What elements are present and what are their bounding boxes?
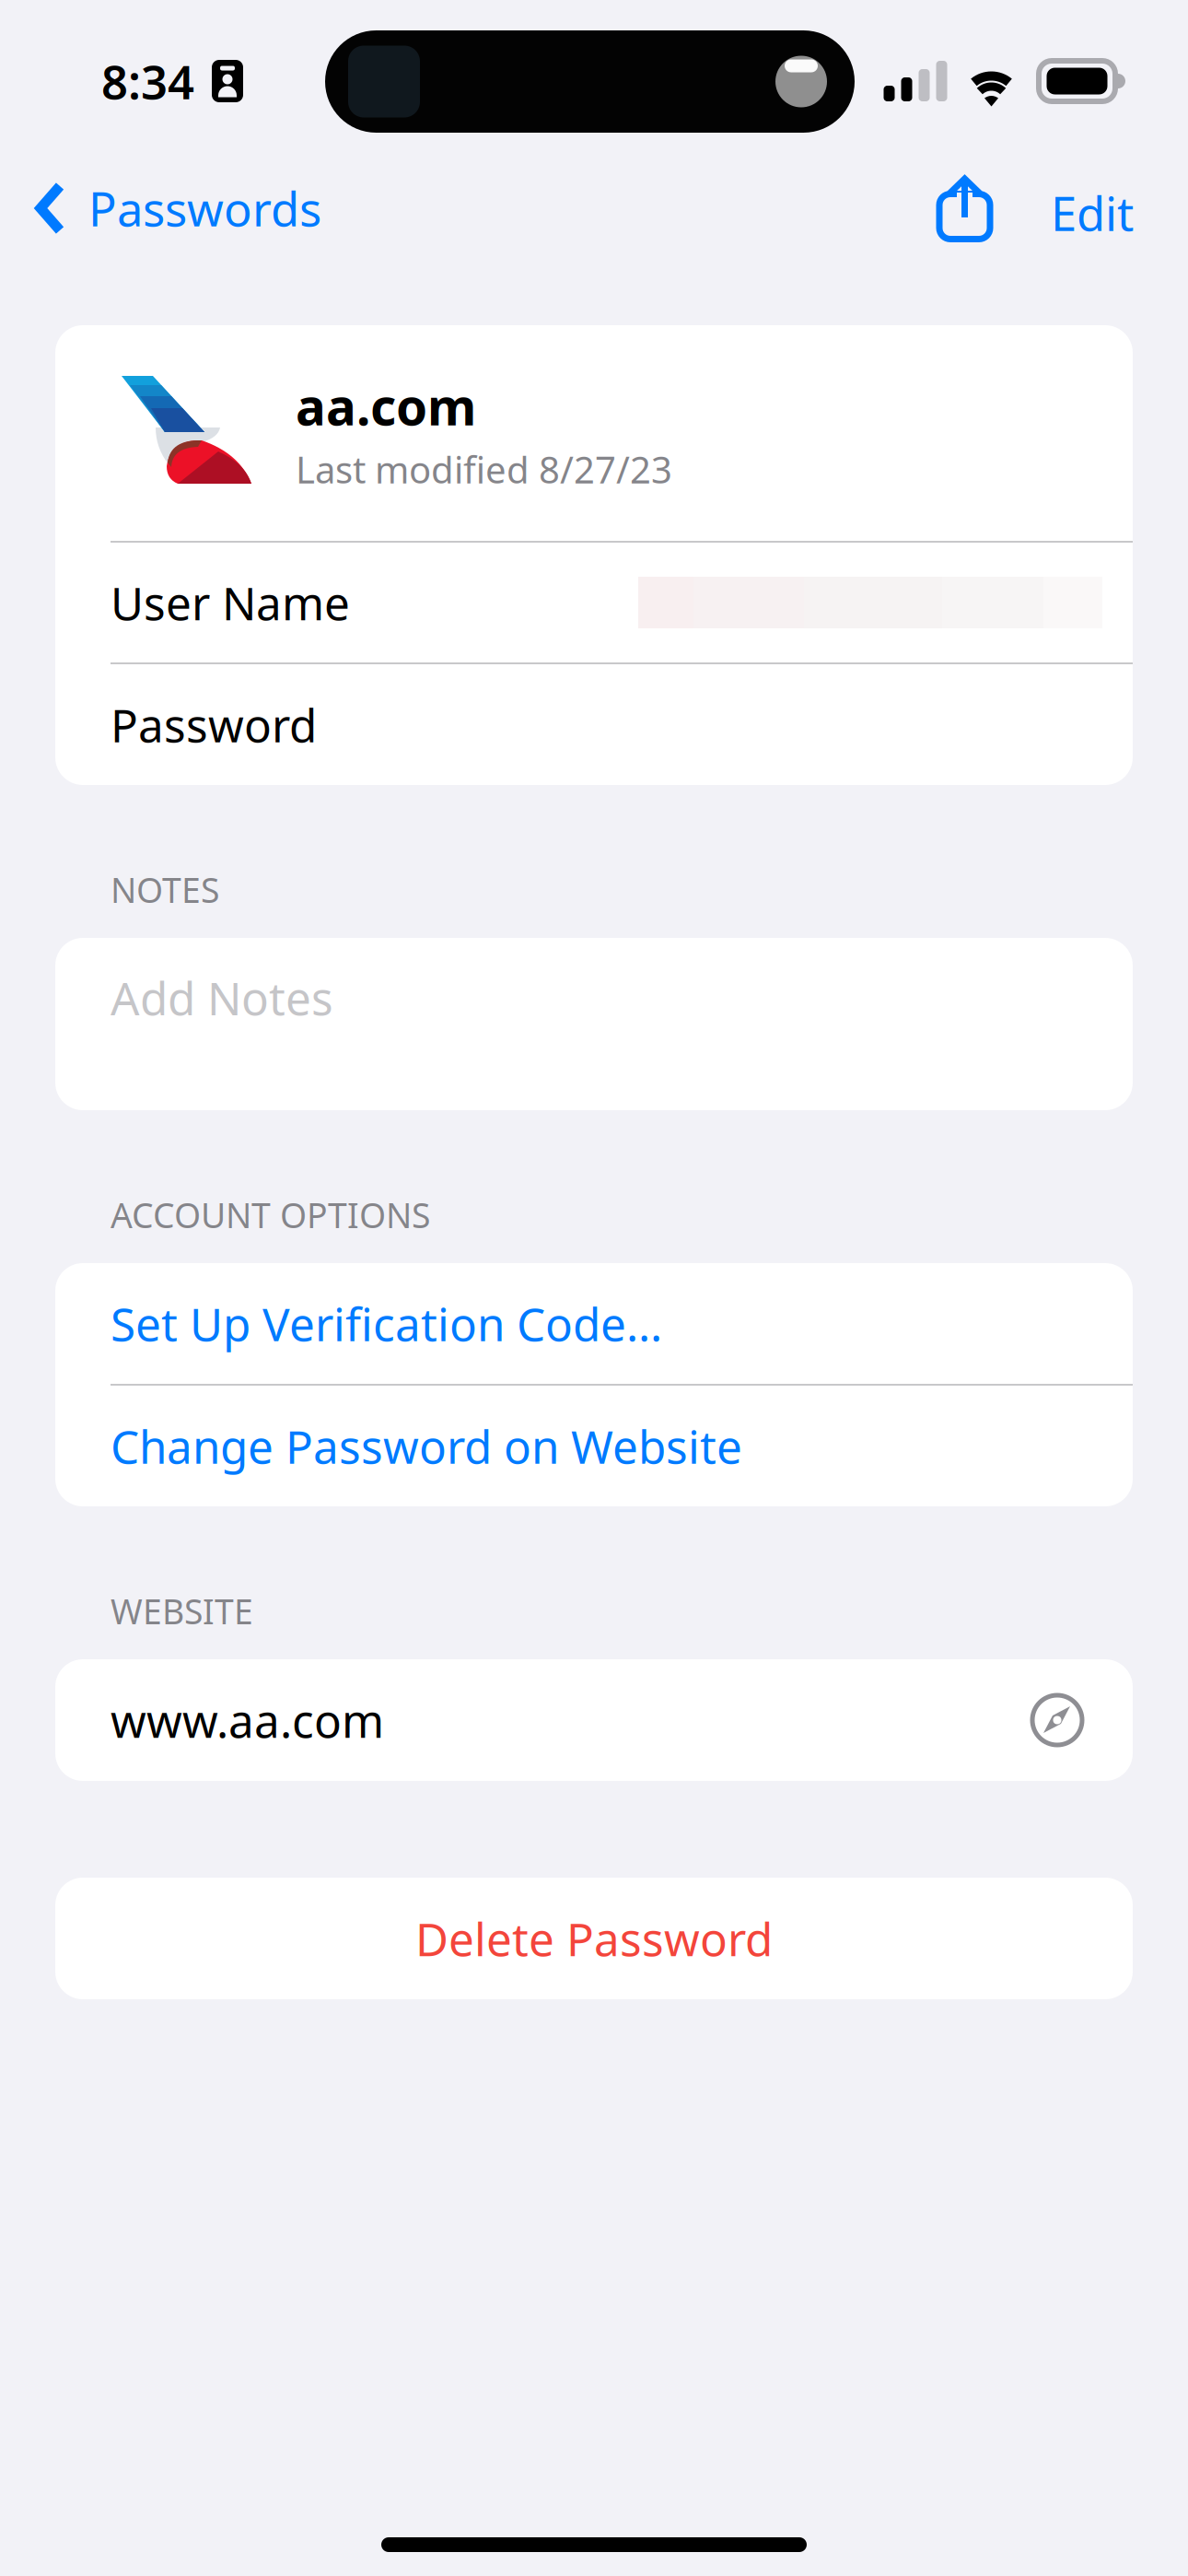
staticText: 8:34 bbox=[101, 50, 194, 112]
staticText: NOTES bbox=[111, 867, 219, 912]
staticText: Password bbox=[111, 694, 317, 755]
staticText: Last modified 8/27/23 bbox=[296, 445, 672, 494]
button[interactable]: Delete Password bbox=[0, 1878, 1188, 1999]
button[interactable]: Edit bbox=[1010, 167, 1188, 259]
staticText: Passwords bbox=[88, 177, 321, 239]
staticText: Delete Password bbox=[415, 1908, 773, 1969]
button[interactable]: User Name bbox=[55, 543, 1133, 662]
staticText: Change Password on Website bbox=[111, 1416, 742, 1476]
staticText: Edit bbox=[1051, 182, 1134, 244]
staticText: www.aa.com bbox=[111, 1690, 384, 1750]
staticText: WEBSITE bbox=[111, 1588, 253, 1634]
button[interactable]: Add Notes bbox=[0, 938, 1188, 1110]
button[interactable]: Share bbox=[908, 166, 1010, 260]
button[interactable]: Set Up Verification Code... bbox=[55, 1263, 1133, 1384]
button[interactable]: Change Password on Website bbox=[55, 1386, 1133, 1506]
button[interactable]: Password bbox=[55, 664, 1133, 785]
staticText: ACCOUNT OPTIONS bbox=[111, 1192, 430, 1238]
button[interactable]: www.aa.com bbox=[0, 1659, 1188, 1781]
staticText: aa.com bbox=[296, 372, 476, 439]
button[interactable]: Passwords bbox=[0, 167, 321, 259]
staticText: Set Up Verification Code... bbox=[111, 1293, 662, 1354]
staticText: User Name bbox=[111, 572, 350, 633]
staticText: Add Notes bbox=[111, 967, 333, 1028]
